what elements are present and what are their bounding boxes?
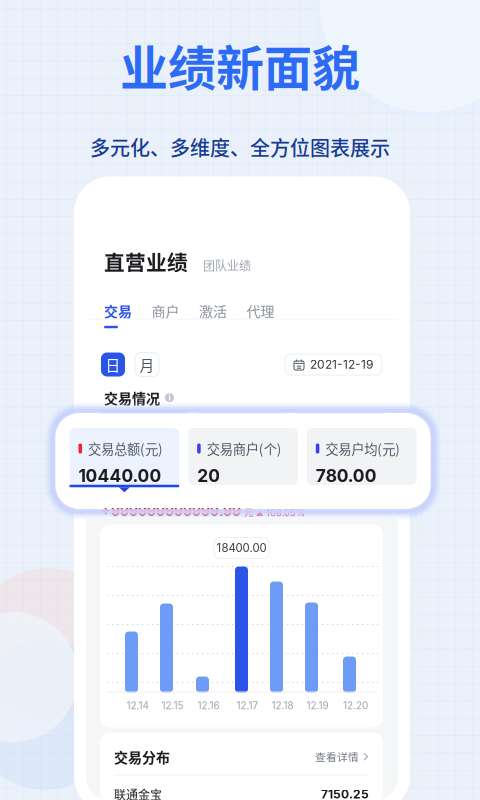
button[interactable]: 交易商户(个) — [197, 410, 287, 455]
staticText: 激活 — [199, 300, 227, 321]
button[interactable]: 查看详情 — [315, 749, 369, 764]
staticText: 交易 — [104, 300, 132, 321]
button[interactable]: 交易户均(元) — [307, 428, 416, 492]
staticText: 12.19 — [306, 699, 328, 712]
staticText: 12.17 — [236, 699, 258, 712]
staticText: 交易情况 — [104, 387, 160, 408]
staticText: 团队业绩 — [203, 257, 251, 274]
staticText: 12.18 — [271, 699, 293, 712]
staticText: 7150.25 — [321, 787, 369, 800]
button[interactable]: 交易户均(元) — [295, 410, 385, 455]
staticText: 10440.00 — [78, 465, 161, 486]
staticText: 元 — [244, 505, 253, 518]
staticText: 交易商户(个) — [210, 419, 266, 434]
staticText: 交易户均(元) — [325, 439, 400, 458]
staticText: +999999999999.99 — [101, 502, 241, 519]
staticText: 20 — [197, 465, 220, 486]
button[interactable]: 代理 — [246, 300, 294, 328]
staticText: ▲ — [256, 509, 263, 517]
button[interactable]: 交易总额(元) — [99, 410, 189, 455]
staticText: 月 — [139, 354, 154, 375]
staticText: 108.05% — [266, 507, 305, 518]
staticText: 12.15 — [161, 699, 183, 712]
button[interactable]: 激活 — [199, 300, 246, 328]
button[interactable]: 交易商户(个) — [188, 428, 298, 492]
staticText: 联通金宝 — [114, 785, 162, 800]
staticText: 交易分布 — [114, 746, 170, 767]
button[interactable]: 月 — [135, 352, 159, 376]
staticText: 12月15日交易额比12月17日 — [99, 487, 235, 504]
button[interactable]: 2021-12-19 — [285, 354, 382, 375]
staticText: 商户 — [151, 300, 179, 321]
staticText: 交易总额(元) — [112, 419, 168, 434]
staticText: 12.14 — [126, 699, 148, 712]
staticText: 2021-12-19 — [310, 357, 373, 372]
button[interactable]: 日 — [101, 352, 125, 376]
staticText: 780.00 — [302, 439, 345, 453]
staticText: 12.16 — [197, 699, 219, 712]
button[interactable]: 交易 — [104, 300, 151, 328]
staticText: 日 — [105, 354, 120, 375]
staticText: 780.00 — [316, 465, 377, 486]
staticText: 业绩新面貌 — [120, 30, 360, 99]
button[interactable]: 商户 — [151, 300, 199, 328]
staticText: 查看详情 — [315, 749, 359, 764]
staticText: 代理 — [246, 300, 274, 321]
staticText: i — [168, 393, 170, 402]
staticText: 直营业绩 — [104, 246, 188, 276]
staticText: 多元化、多维度、全方位图表展示 — [90, 132, 390, 161]
staticText: 交易总额(元) — [88, 439, 163, 458]
staticText: 12.20 — [343, 699, 368, 712]
staticText: 18400.00 — [216, 541, 266, 555]
staticText: 10440.00 — [106, 439, 163, 453]
button[interactable]: 交易总额(元) — [69, 428, 179, 492]
staticText: 20 — [204, 439, 220, 453]
staticText: 交易户均(元) — [308, 419, 364, 434]
staticText: 交易商户(个) — [207, 439, 282, 458]
